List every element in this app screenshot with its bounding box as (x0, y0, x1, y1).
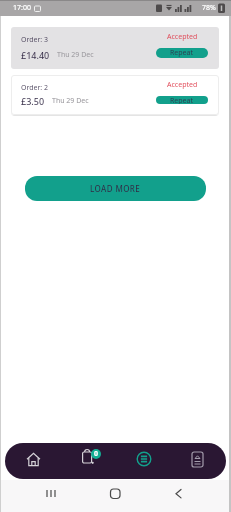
button[interactable]: Repeat (156, 48, 208, 58)
staticText: 78% (202, 3, 216, 13)
staticText: Order: 2 (21, 83, 49, 93)
button[interactable] (5, 443, 61, 479)
button[interactable] (116, 443, 171, 479)
staticText: Repeat (170, 48, 194, 58)
button[interactable]: Order: 2 (11, 75, 219, 115)
staticText: Order: 3 (21, 35, 49, 45)
button[interactable]: 0 (61, 443, 116, 479)
button[interactable] (0, 480, 77, 512)
staticText: Repeat (170, 96, 194, 104)
staticText: Thu 29 Dec (57, 50, 94, 60)
button[interactable]: Repeat (156, 96, 208, 104)
staticText: 0 (94, 449, 99, 459)
staticText: £14.40 (21, 49, 50, 61)
button[interactable] (154, 480, 231, 512)
staticText: Thu 29 Dec (52, 96, 89, 106)
button[interactable]: Order: 3 (11, 27, 219, 69)
staticText: £3.50 (21, 95, 45, 107)
button[interactable]: LOAD MORE (25, 176, 206, 201)
staticText: Accepted (167, 80, 198, 90)
staticText: 17:00 (13, 3, 31, 13)
button[interactable] (171, 443, 226, 479)
staticText: LOAD MORE (90, 183, 141, 194)
staticText: Accepted (167, 32, 198, 42)
button[interactable] (77, 480, 154, 512)
